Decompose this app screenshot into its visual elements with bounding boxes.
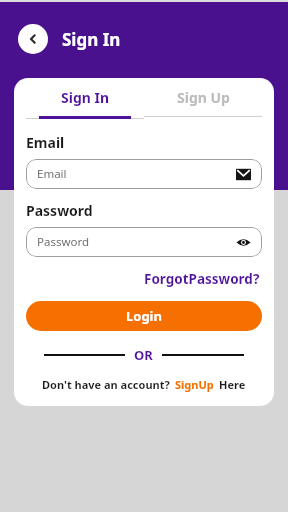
staticText: ForgotPassword?	[144, 270, 260, 288]
button[interactable]: Sign In	[26, 78, 144, 116]
staticText: Sign Up	[177, 88, 230, 107]
staticText: Password	[26, 201, 93, 220]
staticText: Login	[126, 307, 162, 325]
button[interactable]: Email	[26, 159, 262, 189]
staticText: Here	[219, 377, 246, 392]
button[interactable]: Login	[26, 301, 262, 331]
button[interactable]: ForgotPassword?	[142, 268, 262, 290]
button[interactable]: SignUp	[175, 377, 214, 392]
staticText: Don't have an account?	[42, 377, 170, 392]
button[interactable]: Sign Up	[144, 78, 262, 116]
staticText: Email	[37, 166, 67, 182]
staticText: SignUp	[175, 377, 214, 392]
button[interactable]: Password	[26, 227, 262, 257]
button[interactable]: Back	[18, 24, 48, 54]
staticText: Sign In	[62, 28, 121, 51]
staticText: OR	[134, 346, 153, 364]
staticText: Sign In	[61, 88, 110, 107]
staticText: Email	[26, 133, 65, 152]
other: Show password	[236, 235, 251, 250]
staticText: Password	[37, 234, 90, 250]
other: Email	[236, 167, 251, 182]
